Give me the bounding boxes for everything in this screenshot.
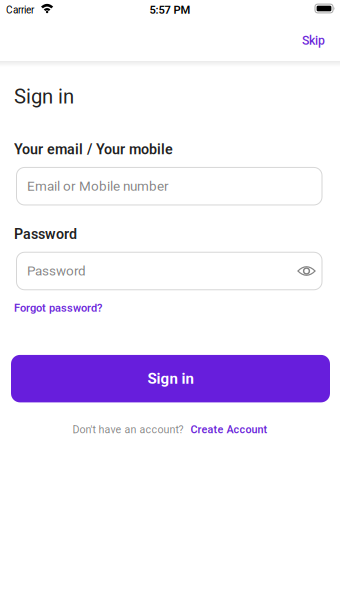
- staticText: Your email / Your mobile: [14, 141, 173, 157]
- button[interactable]: Skip: [302, 33, 340, 47]
- staticText: Email or Mobile number: [27, 178, 169, 194]
- button[interactable]: Show password: [297, 265, 322, 276]
- staticText: 5:57 PM: [149, 4, 190, 16]
- staticText: Sign in: [14, 85, 74, 108]
- button[interactable]: Create Account: [190, 423, 267, 436]
- button[interactable]: Forgot password?: [14, 302, 102, 314]
- staticText: Skip: [302, 33, 325, 47]
- staticText: Carrier: [6, 4, 34, 16]
- staticText: Sign in: [147, 370, 193, 387]
- staticText: Forgot password?: [14, 302, 102, 314]
- staticText: Password: [14, 226, 77, 242]
- staticText: Password: [27, 263, 86, 279]
- button[interactable]: Sign in: [11, 355, 330, 402]
- staticText: Don't have an account?: [72, 423, 183, 436]
- staticText: Create Account: [190, 423, 267, 436]
